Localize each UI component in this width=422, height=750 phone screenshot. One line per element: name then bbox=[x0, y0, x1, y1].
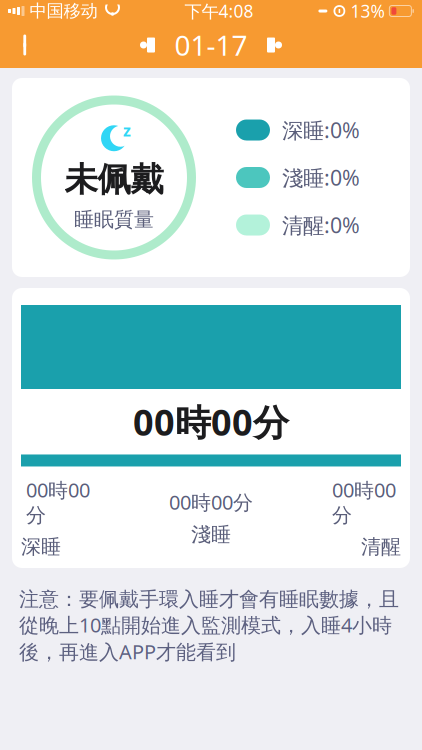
staticText: 注意：要佩戴手環入睡才會有睡眠數據，且從晚上10點開始進入監測模式，入睡4小時後… bbox=[19, 587, 399, 665]
staticText: 深睡:0% bbox=[282, 116, 360, 144]
staticText: 中国移动 bbox=[29, 0, 97, 22]
staticText: 深睡 bbox=[21, 535, 61, 559]
button[interactable]: Previous day bbox=[132, 26, 162, 64]
staticText: 00時00分 bbox=[169, 489, 253, 515]
staticText: 睡眠質量 bbox=[74, 207, 154, 232]
button[interactable]: Back bbox=[0, 23, 54, 67]
staticText: 00時00分 bbox=[332, 476, 396, 528]
staticText: 清醒 bbox=[361, 535, 401, 559]
staticText: z bbox=[123, 120, 131, 141]
staticText: 淺睡 bbox=[191, 522, 231, 547]
staticText: 13% bbox=[350, 0, 384, 22]
staticText: 未佩戴 bbox=[64, 159, 163, 200]
staticText: 00時00分 bbox=[133, 398, 289, 446]
staticText: 清醒:0% bbox=[282, 211, 360, 239]
staticText: 01-17 bbox=[174, 26, 247, 64]
staticText: 下午4:08 bbox=[184, 0, 253, 22]
staticText: 淺睡:0% bbox=[282, 163, 360, 192]
staticText: 00時00分 bbox=[26, 476, 90, 528]
button[interactable]: Next day bbox=[259, 26, 289, 64]
